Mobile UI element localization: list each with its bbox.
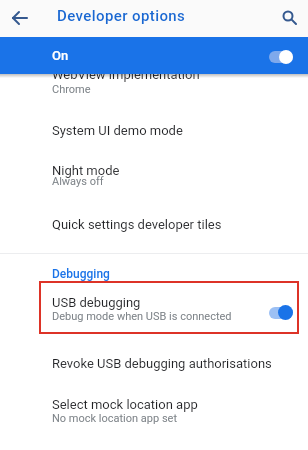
staticText: Select mock location app bbox=[52, 397, 198, 412]
staticText: USB debugging bbox=[52, 295, 141, 310]
staticText: Debug mode when USB is connected bbox=[52, 310, 232, 323]
staticText: Debugging bbox=[52, 267, 110, 281]
staticText: WebView implementation bbox=[52, 67, 200, 82]
button[interactable] bbox=[0, 285, 308, 331]
button[interactable] bbox=[269, 307, 293, 319]
staticText: Developer options bbox=[57, 7, 186, 25]
button[interactable] bbox=[0, 202, 308, 246]
staticText: Revoke USB debugging authorisations bbox=[52, 356, 272, 371]
button[interactable] bbox=[0, 340, 308, 384]
button[interactable] bbox=[0, 108, 308, 152]
staticText: System UI demo mode bbox=[52, 123, 183, 138]
staticText: On bbox=[52, 48, 69, 63]
staticText: No mock location app set bbox=[52, 412, 178, 425]
button[interactable] bbox=[276, 3, 304, 31]
staticText: Quick settings developer tiles bbox=[52, 217, 222, 232]
staticText: Always off bbox=[52, 175, 104, 188]
button[interactable] bbox=[0, 37, 308, 74]
button[interactable] bbox=[0, 386, 308, 432]
staticText: Night mode bbox=[52, 163, 120, 178]
button[interactable] bbox=[6, 4, 34, 32]
button[interactable] bbox=[0, 74, 308, 98]
button[interactable] bbox=[269, 51, 293, 63]
button[interactable] bbox=[0, 152, 308, 198]
staticText: Chrome bbox=[52, 83, 91, 96]
